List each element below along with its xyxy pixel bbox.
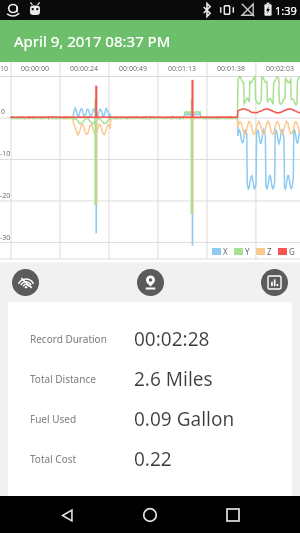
staticText: Y (245, 246, 250, 257)
button[interactable]: Total Cost (8, 446, 292, 472)
staticText: 0 (1, 107, 6, 117)
staticText: 00:00:00 (11, 64, 59, 74)
button[interactable]: Map location (137, 269, 164, 296)
staticText: -10 (0, 149, 11, 159)
button[interactable]: Record Duration (8, 326, 292, 352)
staticText: Total Cost (30, 452, 126, 466)
staticText: 1:39 (275, 3, 297, 18)
staticText: Z (267, 246, 272, 257)
staticText: 0.22 (134, 446, 172, 472)
staticText: Total Distance (30, 372, 126, 386)
button[interactable]: Fuel Used (8, 406, 292, 432)
button[interactable]: Back (52, 500, 82, 530)
staticText: April 9, 2017 08:37 PM (14, 31, 171, 51)
staticText: Record Duration (30, 332, 126, 346)
staticText: 00:00:24 (60, 64, 108, 74)
staticText: 00:01:13 (158, 64, 206, 74)
staticText: X (223, 246, 228, 257)
button[interactable]: Recent apps (218, 500, 248, 530)
button[interactable]: Home (135, 500, 165, 530)
staticText: -30 (0, 233, 11, 243)
staticText: 10 (0, 64, 9, 74)
staticText: 0.09 Gallon (134, 406, 235, 432)
button[interactable]: Signal (12, 269, 39, 296)
button[interactable]: Statistics (261, 269, 288, 296)
staticText: 2.6 Miles (134, 366, 213, 392)
staticText: 00:01:38 (207, 64, 255, 74)
staticText: G (289, 246, 295, 257)
staticText: -20 (0, 191, 11, 201)
staticText: 00:00:49 (109, 64, 157, 74)
staticText: 00:02:03 (256, 64, 300, 74)
button[interactable]: Total Distance (8, 366, 292, 392)
staticText: 00:02:28 (134, 326, 210, 352)
staticText: Fuel Used (30, 412, 126, 426)
